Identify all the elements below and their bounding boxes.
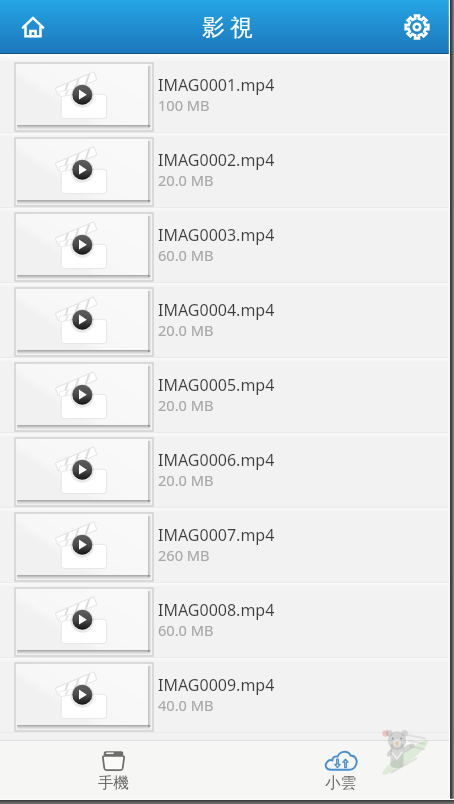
staticText: 260 MB: [158, 545, 210, 565]
staticText: 60.0 MB: [158, 245, 214, 265]
staticText: 20.0 MB: [158, 320, 214, 340]
staticText: 手機: [98, 773, 129, 793]
button[interactable]: IMAG0003.mp4: [0, 208, 454, 283]
staticText: IMAG0009.mp4: [158, 674, 275, 696]
button[interactable]: IMAG0009.mp4: [0, 658, 454, 733]
staticText: IMAG0006.mp4: [158, 449, 275, 471]
staticText: 60.0 MB: [158, 620, 214, 640]
staticText: IMAG0004.mp4: [158, 299, 275, 321]
button[interactable]: Settings: [380, 0, 454, 54]
staticText: IMAG0003.mp4: [158, 224, 275, 246]
button[interactable]: IMAG0004.mp4: [0, 283, 454, 358]
button[interactable]: IMAG0006.mp4: [0, 433, 454, 508]
button[interactable]: IMAG0001.mp4: [0, 58, 454, 133]
staticText: 20.0 MB: [158, 170, 214, 190]
staticText: 100 MB: [158, 95, 210, 115]
staticText: 40.0 MB: [158, 695, 214, 715]
staticText: IMAG0008.mp4: [158, 599, 275, 621]
staticText: IMAG0002.mp4: [158, 149, 275, 171]
staticText: 20.0 MB: [158, 470, 214, 490]
button[interactable]: 小雲: [227, 740, 454, 804]
staticText: IMAG0007.mp4: [158, 524, 275, 546]
button[interactable]: 手機: [0, 740, 227, 804]
staticText: 小雲: [325, 773, 356, 793]
button[interactable]: IMAG0005.mp4: [0, 358, 454, 433]
button[interactable]: IMAG0002.mp4: [0, 133, 454, 208]
staticText: IMAG0001.mp4: [158, 74, 275, 96]
staticText: 影 視: [202, 11, 253, 42]
button[interactable]: Home: [0, 0, 66, 54]
staticText: IMAG0005.mp4: [158, 374, 275, 396]
staticText: 20.0 MB: [158, 395, 214, 415]
button[interactable]: IMAG0007.mp4: [0, 508, 454, 583]
button[interactable]: IMAG0008.mp4: [0, 583, 454, 658]
